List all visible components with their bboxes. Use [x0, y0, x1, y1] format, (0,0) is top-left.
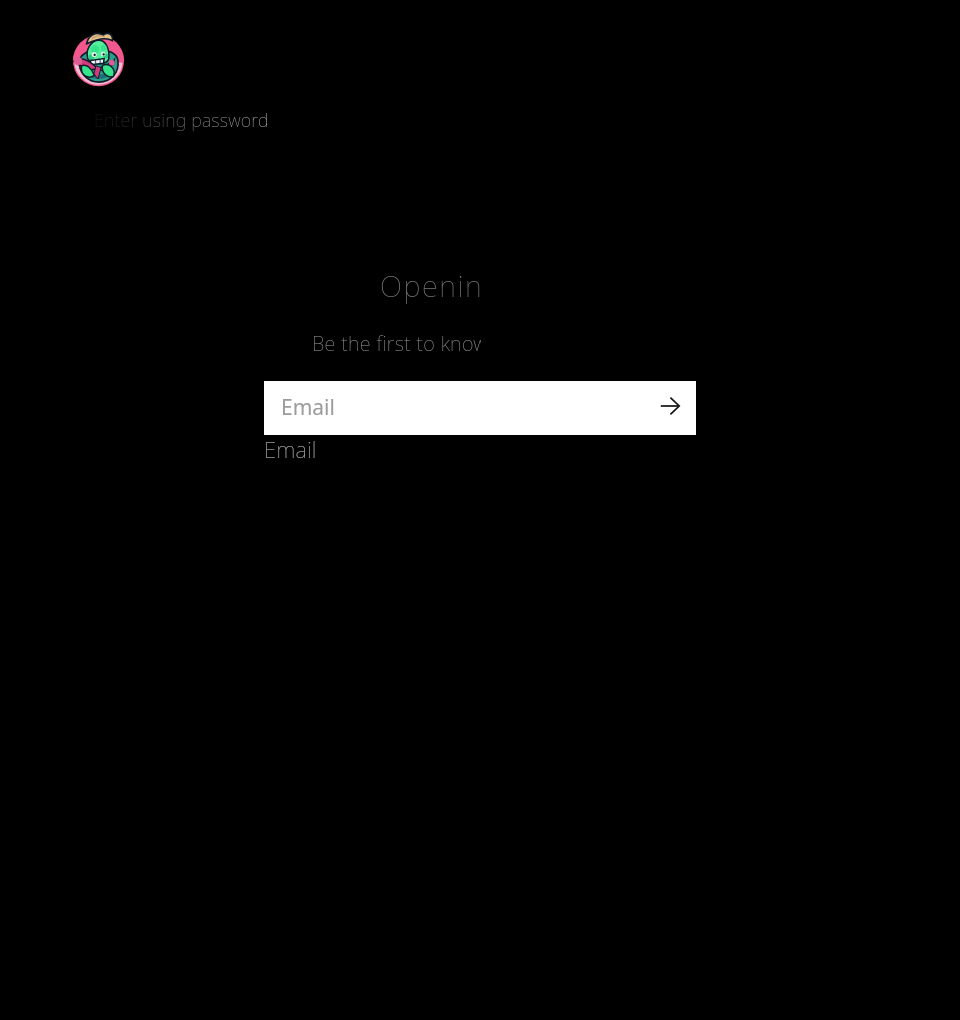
staticText: Email — [281, 393, 335, 422]
button[interactable]: Home — [71, 32, 126, 87]
button[interactable]: Submit email — [652, 388, 688, 424]
staticText: Be the first to know — [312, 330, 481, 357]
staticText: Opening — [380, 266, 481, 305]
staticText: Enter using password — [94, 108, 269, 133]
button[interactable]: Enter using password — [86, 104, 277, 137]
staticText: Email — [264, 434, 317, 464]
button[interactable]: Email — [264, 381, 696, 435]
